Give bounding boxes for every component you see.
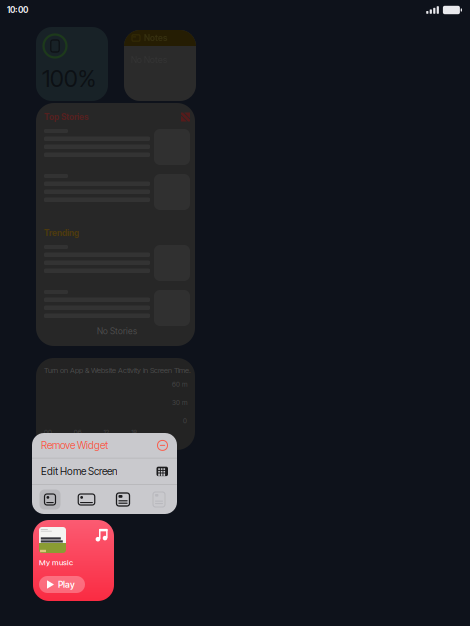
staticText: 30 m bbox=[172, 399, 187, 406]
staticText: Turn on App & Website Activity in Screen… bbox=[44, 366, 191, 375]
staticText: 18 bbox=[131, 429, 137, 436]
button[interactable]: Large widget bbox=[105, 485, 141, 514]
button[interactable]: Medium widget bbox=[68, 485, 105, 514]
staticText: Top Stories bbox=[44, 112, 89, 122]
staticText: No Stories bbox=[97, 326, 137, 336]
button[interactable]: Remove Widget bbox=[32, 433, 177, 458]
staticText: 00 bbox=[44, 429, 52, 436]
staticText: 0 bbox=[183, 417, 187, 425]
staticText: Trending bbox=[44, 228, 79, 238]
staticText: 60 m bbox=[172, 381, 187, 388]
button[interactable]: Play bbox=[39, 576, 85, 593]
staticText: Play bbox=[58, 579, 75, 589]
staticText: Notes bbox=[144, 33, 167, 43]
staticText: 12 bbox=[103, 429, 109, 436]
staticText: My music bbox=[39, 558, 73, 567]
button[interactable]: Edit Home Screen bbox=[32, 458, 177, 484]
staticText: 100% bbox=[42, 65, 96, 92]
staticText: 10:00 bbox=[7, 5, 28, 15]
staticText: Remove Widget bbox=[41, 440, 108, 451]
staticText: Edit Home Screen bbox=[41, 466, 117, 477]
button[interactable]: Small widget bbox=[32, 485, 68, 514]
button[interactable]: Extra large widget bbox=[141, 485, 177, 514]
staticText: 06 bbox=[74, 429, 82, 436]
